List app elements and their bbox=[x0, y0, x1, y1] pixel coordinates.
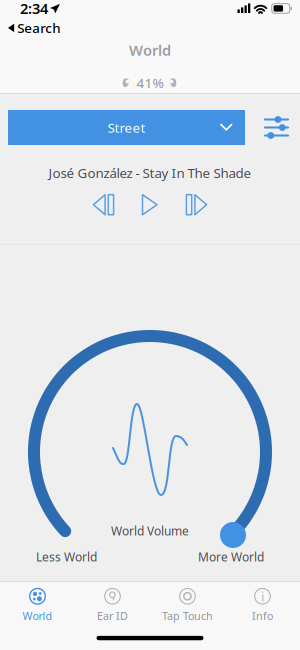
button[interactable]: Ear ID bbox=[75, 582, 150, 626]
button[interactable]: Next track bbox=[185, 194, 207, 216]
staticText: World Volume bbox=[111, 523, 189, 539]
button[interactable]: Audio settings bbox=[265, 117, 288, 138]
button[interactable]: Street bbox=[8, 110, 245, 145]
staticText: Info bbox=[252, 609, 273, 623]
staticText: More World bbox=[198, 549, 264, 565]
staticText: World bbox=[129, 40, 171, 60]
button[interactable]: Previous track bbox=[92, 194, 114, 216]
button[interactable]: Search bbox=[0, 19, 300, 36]
staticText: José González - Stay In The Shade bbox=[48, 164, 251, 182]
button[interactable]: World bbox=[0, 582, 75, 626]
staticText: 41% bbox=[136, 74, 163, 92]
staticText: i bbox=[261, 587, 264, 605]
staticText: Less World bbox=[36, 549, 97, 565]
button[interactable]: i bbox=[225, 582, 300, 626]
staticText: Ear ID bbox=[97, 609, 128, 623]
staticText: 2:34 bbox=[20, 0, 48, 18]
button[interactable]: Play bbox=[141, 194, 158, 216]
staticText: Street bbox=[107, 119, 145, 136]
staticText: Tap Touch bbox=[162, 609, 213, 623]
button[interactable]: Tap Touch bbox=[150, 582, 225, 626]
staticText: Search bbox=[17, 19, 60, 37]
staticText: World bbox=[22, 609, 52, 623]
